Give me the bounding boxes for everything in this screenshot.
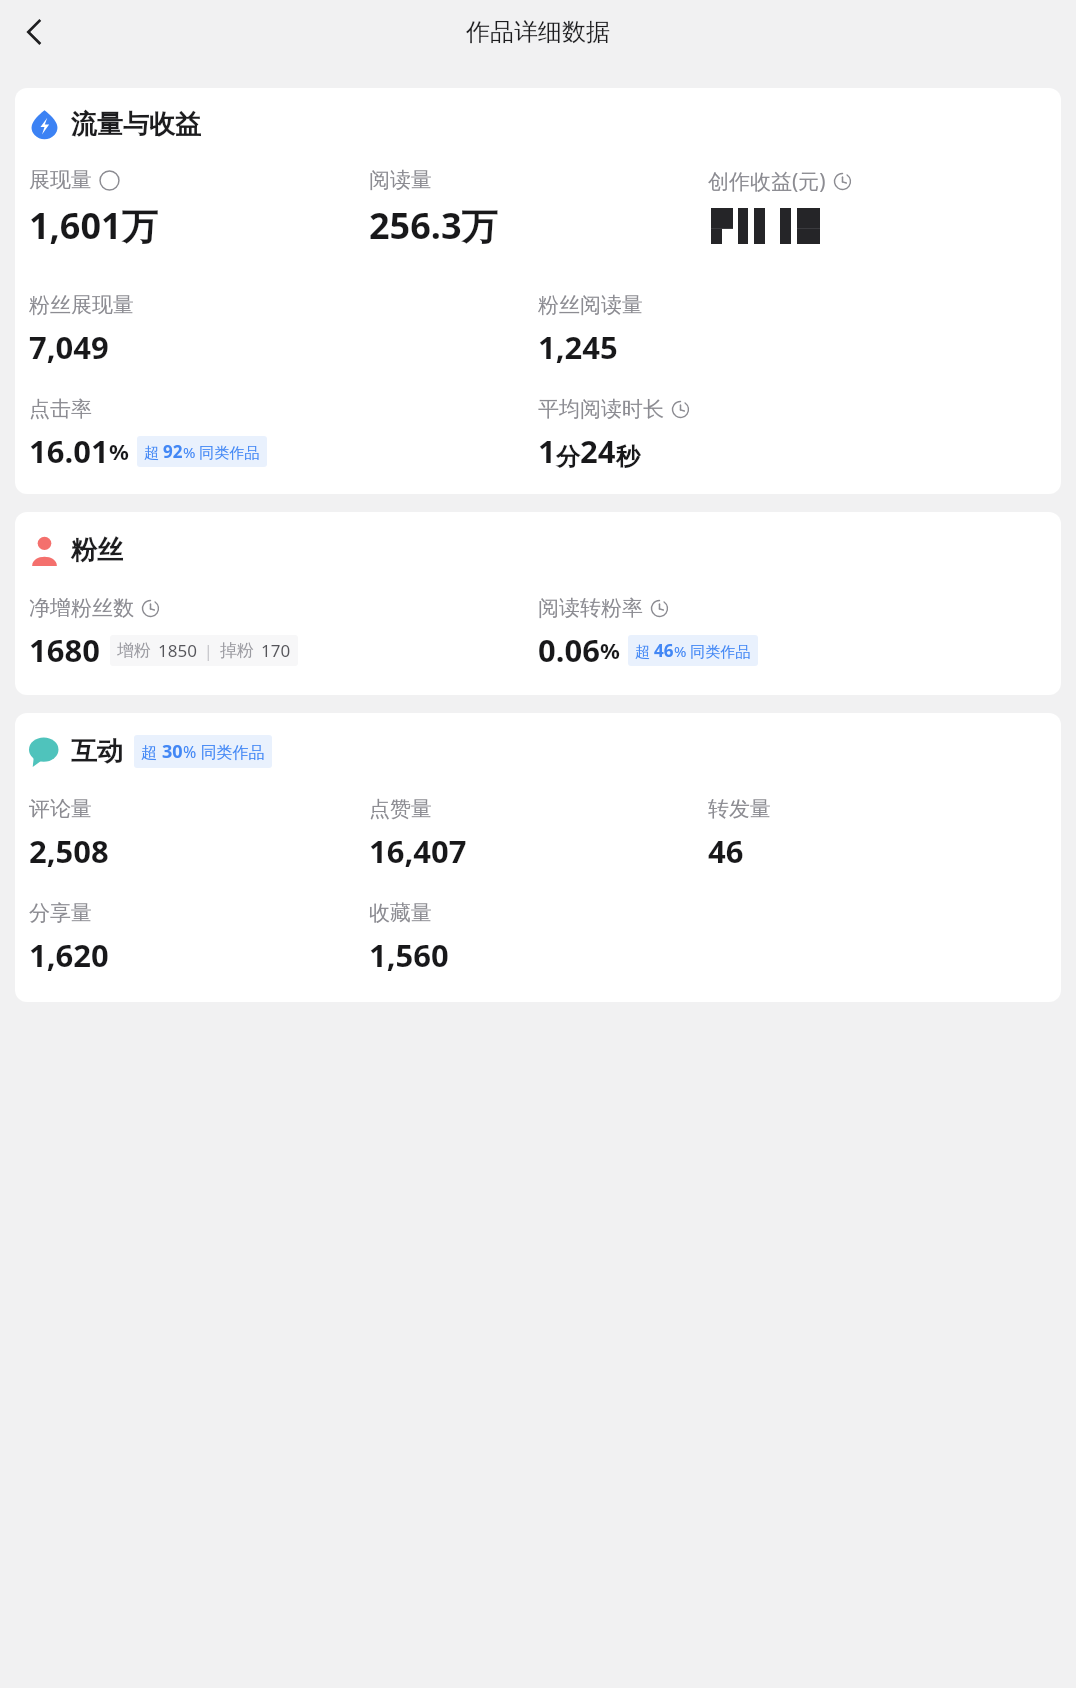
staticText: 30 [162, 739, 183, 764]
staticText: 1,620 [29, 934, 109, 976]
staticText: 流量与收益 [71, 108, 201, 141]
staticText: 16,407 [369, 830, 467, 872]
staticText: 24 [580, 430, 616, 472]
staticText: 掉粉 [220, 640, 254, 661]
staticText: 粉丝展现量 [29, 292, 134, 318]
staticText: 作品详细数据 [466, 17, 610, 47]
staticText: 7,049 [29, 326, 109, 368]
staticText: 分享量 [29, 900, 92, 926]
button[interactable]: 互动 [15, 713, 1061, 1002]
staticText: % [109, 436, 129, 466]
staticText: 1680 [29, 629, 100, 671]
staticText: 1,601万 [29, 201, 158, 250]
staticText: 1,245 [538, 326, 618, 368]
staticText: 170 [261, 639, 291, 662]
staticText: 1,560 [369, 934, 449, 976]
staticText: 展现量 [29, 167, 92, 193]
staticText: 收藏量 [369, 900, 432, 926]
button[interactable]: Back [8, 6, 60, 58]
staticText: % 同类作品 [183, 442, 260, 462]
staticText: 点击率 [29, 396, 92, 422]
staticText: 2,508 [29, 830, 109, 872]
staticText: 阅读转粉率 [538, 595, 643, 621]
staticText: 16.01 [29, 430, 109, 472]
staticText: 46 [708, 830, 744, 872]
button[interactable]: 流量与收益 [15, 88, 1061, 494]
staticText: 互动 [71, 735, 123, 768]
staticText: % 同类作品 [674, 641, 751, 661]
staticText: 分 [556, 442, 580, 472]
staticText: % 同类作品 [183, 741, 265, 763]
staticText: 评论量 [29, 796, 92, 822]
staticText: 超 [635, 641, 654, 661]
staticText: 转发量 [708, 796, 771, 822]
staticText: 秒 [616, 442, 640, 472]
staticText: 净增粉丝数 [29, 595, 134, 621]
staticText: 46 [654, 639, 674, 662]
staticText: % [600, 635, 620, 665]
staticText: 0.06 [538, 629, 600, 671]
staticText: 粉丝阅读量 [538, 292, 643, 318]
staticText: 阅读量 [369, 167, 432, 193]
staticText: 点赞量 [369, 796, 432, 822]
staticText: | [204, 640, 213, 662]
staticText: 创作收益(元) [708, 167, 826, 196]
staticText: 92 [163, 440, 183, 463]
button[interactable]: 粉丝 [15, 512, 1061, 695]
staticText: 粉丝 [71, 534, 123, 567]
staticText: 1 [538, 430, 556, 472]
staticText: 256.3万 [369, 201, 498, 250]
staticText: 1850 [158, 639, 197, 662]
staticText: 平均阅读时长 [538, 396, 664, 422]
staticText: 超 [141, 741, 162, 763]
staticText: 超 [144, 442, 163, 462]
staticText: 增粉 [117, 640, 151, 661]
